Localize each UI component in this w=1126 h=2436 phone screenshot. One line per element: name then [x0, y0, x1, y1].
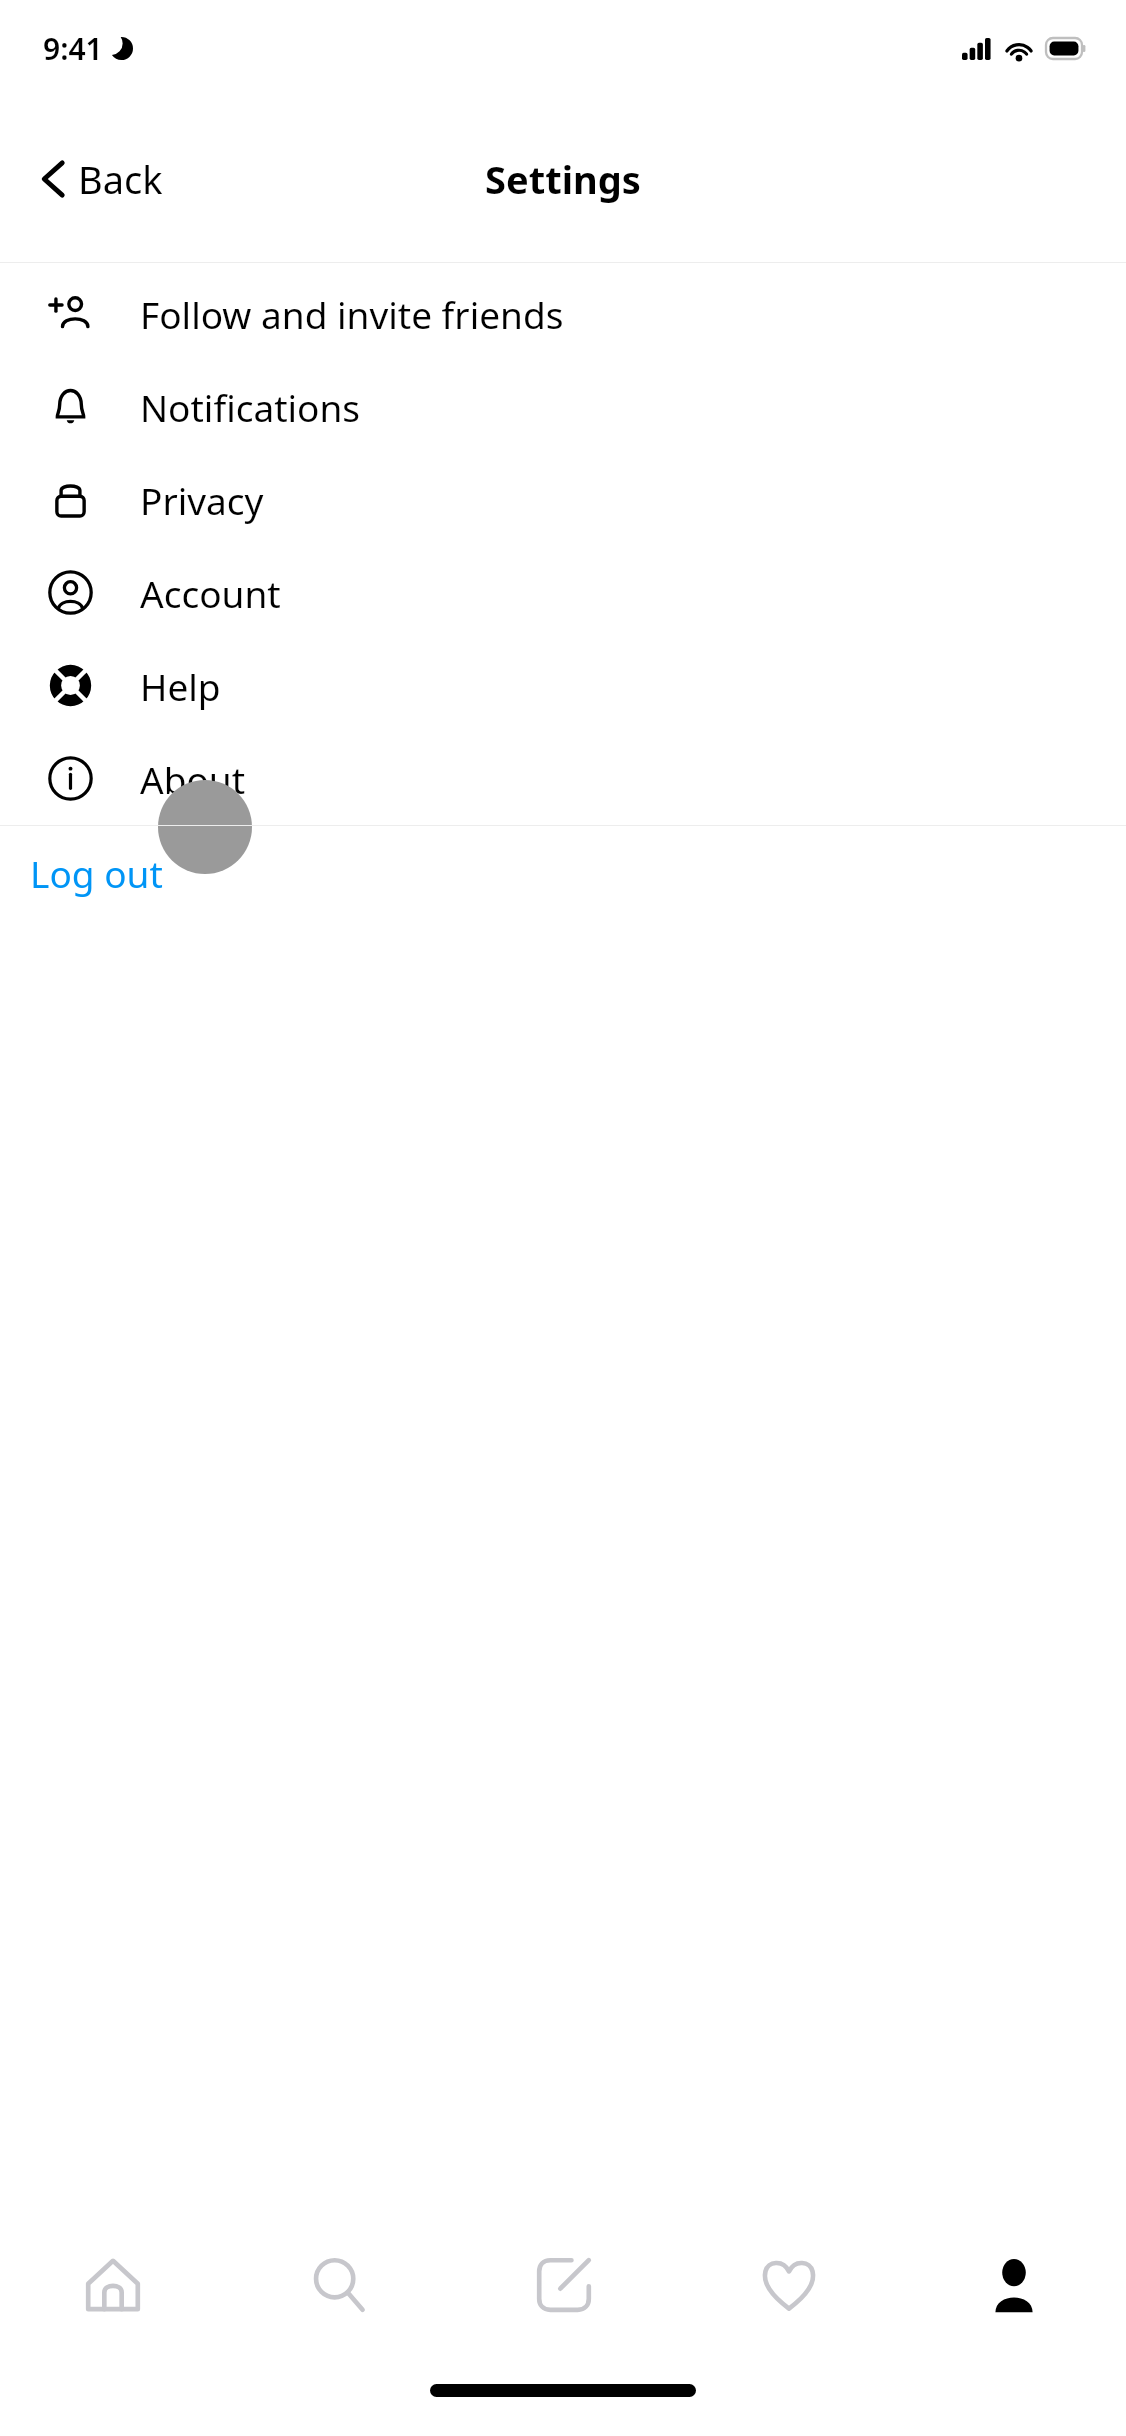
button[interactable]: About [0, 732, 1126, 825]
button[interactable]: Follow and invite friends [0, 267, 1126, 360]
staticText: Privacy [140, 475, 264, 525]
button[interactable]: Notifications [0, 360, 1126, 453]
button[interactable]: Profile [901, 2232, 1126, 2384]
button[interactable]: Account [0, 546, 1126, 639]
staticText: Follow and invite friends [140, 289, 564, 339]
staticText: Help [140, 661, 221, 711]
staticText: Notifications [140, 382, 361, 432]
button[interactable]: Help [0, 639, 1126, 732]
button[interactable]: Back [30, 143, 175, 215]
button[interactable]: Create [451, 2232, 676, 2384]
staticText: Settings [485, 153, 641, 205]
button[interactable]: Home [0, 2232, 226, 2384]
staticText: 9:41 [43, 28, 103, 69]
staticText: Account [140, 568, 281, 618]
button[interactable]: Privacy [0, 453, 1126, 546]
button[interactable]: Search [226, 2232, 451, 2384]
staticText: Back [78, 153, 163, 205]
staticText: Log out [30, 848, 163, 898]
button[interactable]: Log out [0, 826, 1126, 919]
button[interactable]: Activity [676, 2232, 901, 2384]
staticText: About [140, 754, 246, 804]
